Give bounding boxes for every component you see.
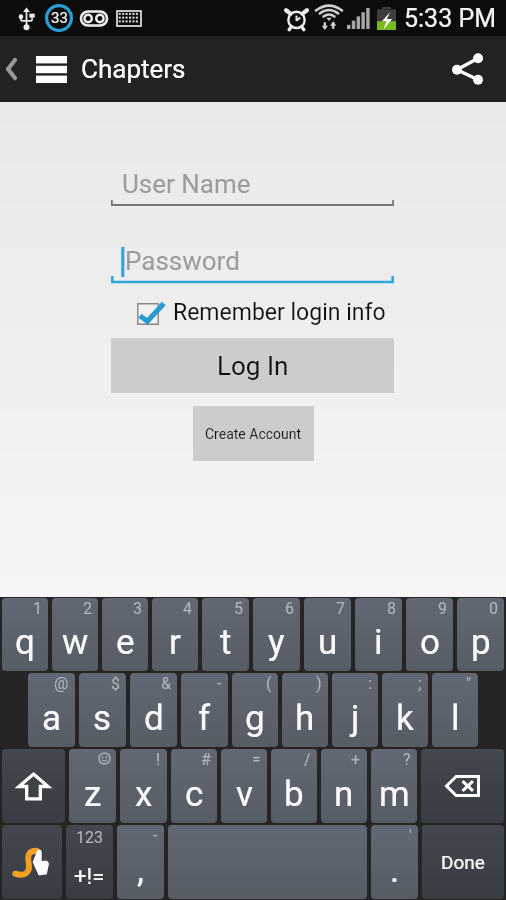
staticText: c bbox=[185, 774, 204, 815]
button[interactable]: Share bbox=[428, 36, 506, 102]
staticText: p bbox=[471, 622, 491, 663]
button[interactable]: " bbox=[432, 673, 478, 747]
staticText: m bbox=[379, 774, 410, 815]
button[interactable]: 8 bbox=[355, 598, 402, 671]
staticText: $ bbox=[111, 674, 120, 693]
button[interactable]: Space bbox=[168, 825, 367, 899]
button[interactable] bbox=[421, 749, 504, 823]
button[interactable]: + bbox=[321, 749, 367, 823]
button[interactable]: = bbox=[221, 749, 267, 823]
staticText: f bbox=[198, 698, 211, 739]
button[interactable]: 123 bbox=[66, 825, 113, 899]
staticText: 9 bbox=[438, 599, 447, 618]
button[interactable]: - bbox=[181, 673, 228, 747]
staticText: Create Account bbox=[205, 426, 302, 442]
staticText: v bbox=[236, 774, 253, 815]
button[interactable]: / bbox=[271, 749, 317, 823]
button[interactable]: ' bbox=[371, 825, 418, 899]
staticText: r bbox=[169, 622, 181, 663]
staticText: 5:33 PM bbox=[404, 4, 497, 33]
staticText: a bbox=[42, 698, 62, 739]
staticText: q bbox=[15, 622, 35, 663]
staticText: l bbox=[451, 698, 460, 739]
staticText: d bbox=[144, 698, 164, 739]
staticText: 123 bbox=[76, 828, 103, 847]
staticText: " bbox=[466, 674, 472, 693]
staticText: - bbox=[153, 826, 158, 845]
staticText: Chapters bbox=[81, 54, 186, 84]
staticText: 2 bbox=[83, 599, 92, 618]
button[interactable]: 9 bbox=[406, 598, 453, 671]
staticText: ; bbox=[418, 674, 422, 693]
staticText: 7 bbox=[336, 599, 345, 618]
staticText: n bbox=[334, 774, 354, 815]
staticText: = bbox=[252, 750, 261, 769]
button[interactable]: ( bbox=[232, 673, 278, 747]
button[interactable] bbox=[2, 749, 65, 823]
button[interactable]: Done bbox=[422, 825, 504, 899]
staticText: & bbox=[161, 674, 171, 693]
staticText: - bbox=[217, 674, 222, 693]
button[interactable]: 2 bbox=[52, 598, 98, 671]
staticText: g bbox=[245, 698, 265, 739]
staticText: b bbox=[284, 774, 304, 815]
staticText: # bbox=[201, 750, 211, 769]
button[interactable]: @ bbox=[28, 673, 75, 747]
button[interactable]: Password bbox=[111, 246, 394, 285]
button[interactable]: 5 bbox=[202, 598, 249, 671]
button[interactable]: - bbox=[117, 825, 164, 899]
staticText: w bbox=[62, 622, 89, 663]
button[interactable]: ) bbox=[282, 673, 328, 747]
button[interactable]: Back bbox=[0, 36, 22, 102]
staticText: u bbox=[318, 622, 338, 663]
button[interactable]: User Name bbox=[111, 169, 394, 208]
staticText: x bbox=[135, 774, 153, 815]
staticText: 4 bbox=[183, 599, 192, 618]
staticText: ! bbox=[156, 750, 161, 769]
staticText: i bbox=[374, 622, 383, 663]
staticText: + bbox=[351, 750, 361, 769]
staticText: 8 bbox=[387, 599, 396, 618]
staticText: 3 bbox=[133, 599, 142, 618]
staticText: : bbox=[368, 674, 372, 693]
button[interactable]: 7 bbox=[304, 598, 351, 671]
button[interactable]: Chapters bbox=[36, 36, 186, 102]
staticText: z bbox=[84, 774, 102, 815]
staticText: Log In bbox=[217, 351, 289, 381]
button[interactable]: 6 bbox=[253, 598, 300, 671]
button[interactable]: Swipe input bbox=[2, 825, 62, 899]
staticText: . bbox=[390, 850, 400, 891]
staticText: 6 bbox=[285, 599, 294, 618]
staticText: Remember login info bbox=[173, 299, 386, 326]
staticText: 5 bbox=[234, 599, 243, 618]
staticText: y bbox=[268, 622, 285, 663]
button[interactable]: Remember login info bbox=[137, 300, 386, 327]
staticText: k bbox=[396, 698, 414, 739]
staticText: 33 bbox=[51, 9, 68, 27]
button[interactable]: Log In bbox=[111, 338, 394, 393]
button[interactable]: z bbox=[69, 749, 116, 823]
staticText: Password bbox=[125, 246, 240, 276]
staticText: ) bbox=[316, 674, 322, 693]
staticText: / bbox=[304, 750, 311, 769]
staticText: ( bbox=[266, 674, 272, 693]
staticText: e bbox=[116, 622, 135, 663]
button[interactable]: 3 bbox=[102, 598, 148, 671]
button[interactable]: : bbox=[332, 673, 378, 747]
staticText: ' bbox=[409, 826, 412, 845]
button[interactable]: Create Account bbox=[193, 406, 314, 461]
button[interactable]: ; bbox=[382, 673, 428, 747]
button[interactable]: ! bbox=[120, 749, 167, 823]
button[interactable]: # bbox=[171, 749, 217, 823]
staticText: Done bbox=[441, 851, 485, 873]
button[interactable]: ? bbox=[371, 749, 417, 823]
button[interactable]: $ bbox=[79, 673, 126, 747]
button[interactable]: 4 bbox=[152, 598, 198, 671]
staticText: ? bbox=[403, 750, 411, 769]
button[interactable]: & bbox=[130, 673, 177, 747]
button[interactable]: 0 bbox=[457, 598, 504, 671]
staticText: User Name bbox=[122, 169, 251, 199]
button[interactable]: 1 bbox=[2, 598, 48, 671]
staticText: +!= bbox=[74, 864, 105, 890]
staticText: h bbox=[295, 698, 315, 739]
